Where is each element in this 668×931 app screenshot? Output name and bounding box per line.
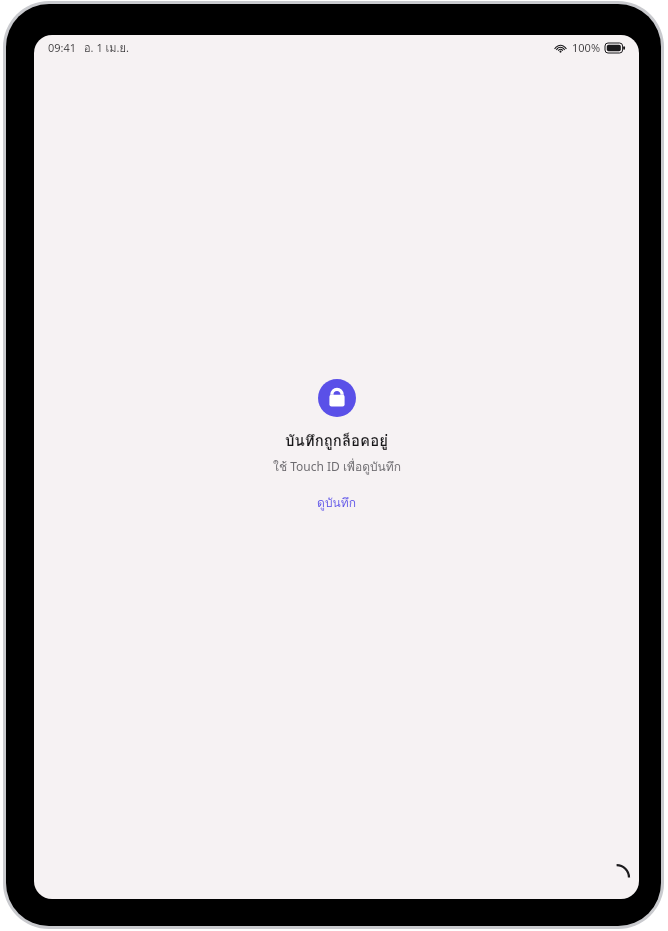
other: Locked xyxy=(318,379,356,417)
button[interactable]: ดูบันทึก xyxy=(307,490,366,515)
staticText: ใช้ Touch ID เพื่อดูบันทึก xyxy=(273,457,401,476)
staticText: บันทึกถูกล็อคอยู่ xyxy=(285,429,388,453)
staticText: ดูบันทึก xyxy=(317,493,356,512)
staticText: 09:41 xyxy=(48,40,77,55)
staticText: อ. 1 เม.ย. xyxy=(84,39,129,56)
staticText: 100% xyxy=(572,40,601,55)
